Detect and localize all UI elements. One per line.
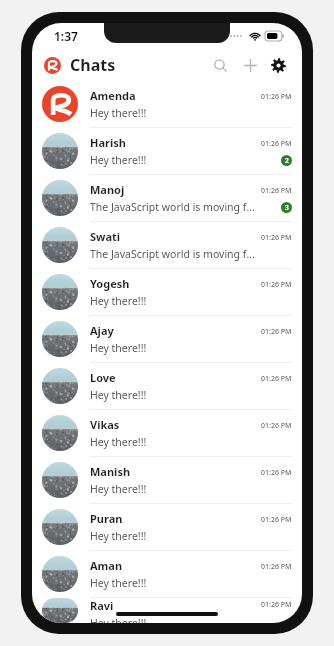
staticText: 1:37	[54, 28, 78, 44]
staticText: Chats	[70, 54, 116, 76]
staticText: Aman	[90, 558, 123, 573]
staticText: Hey there!!!	[90, 294, 147, 308]
staticText: Yogesh	[90, 276, 130, 291]
staticText: Harish	[90, 135, 126, 150]
staticText: Love	[90, 370, 116, 385]
staticText: 01:26 PM	[261, 515, 292, 525]
staticText: 01:26 PM	[261, 92, 292, 102]
staticText: 01:26 PM	[261, 374, 292, 384]
staticText: Puran	[90, 511, 123, 526]
button[interactable]: Puran	[32, 504, 302, 551]
staticText: Manish	[90, 464, 131, 479]
staticText: Ajay	[90, 323, 114, 338]
staticText: Amenda	[90, 88, 136, 103]
staticText: 01:26 PM	[261, 233, 292, 243]
staticText: 01:26 PM	[261, 139, 292, 149]
button[interactable]: New chat	[238, 53, 262, 77]
staticText: 3	[285, 203, 289, 212]
staticText: Manoj	[90, 182, 125, 197]
button[interactable]: Manish	[32, 457, 302, 504]
staticText: 01:26 PM	[261, 186, 292, 196]
staticText: Hey there!!!	[90, 482, 147, 496]
staticText: 01:26 PM	[261, 562, 292, 572]
staticText: Swati	[90, 229, 121, 244]
staticText: 01:26 PM	[261, 600, 292, 610]
button[interactable]: Vikas	[32, 410, 302, 457]
button[interactable]: Swati	[32, 222, 302, 269]
button[interactable]: Ajay	[32, 316, 302, 363]
button[interactable]: Manoj	[32, 175, 302, 222]
staticText: 2	[285, 156, 289, 165]
button[interactable]: Amenda	[32, 81, 302, 128]
staticText: Hey there!!!	[90, 576, 147, 590]
staticText: Vikas	[90, 417, 120, 432]
staticText: Hey there!!!	[90, 153, 147, 167]
staticText: Hey there!!!	[90, 529, 147, 543]
staticText: Ravi	[90, 598, 114, 613]
staticText: 01:26 PM	[261, 327, 292, 337]
button[interactable]: Harish	[32, 128, 302, 175]
button[interactable]: Aman	[32, 551, 302, 598]
button[interactable]: Love	[32, 363, 302, 410]
staticText: Hey there!!!	[90, 435, 147, 449]
button[interactable]: Yogesh	[32, 269, 302, 316]
staticText: 01:26 PM	[261, 421, 292, 431]
staticText: 01:26 PM	[261, 468, 292, 478]
button[interactable]: Settings	[266, 53, 290, 77]
staticText: Hey there!!!	[90, 616, 147, 623]
staticText: Hey there!!!	[90, 341, 147, 355]
staticText: Hey there!!!	[90, 388, 147, 402]
button[interactable]: Search	[208, 53, 232, 77]
staticText: 01:26 PM	[261, 280, 292, 290]
button[interactable]: Ravi	[32, 598, 302, 623]
staticText: The JavaScript world is moving fast. The…	[90, 200, 255, 214]
staticText: The JavaScript world is moving fast. The…	[90, 247, 255, 261]
staticText: Hey there!!!	[90, 106, 147, 120]
